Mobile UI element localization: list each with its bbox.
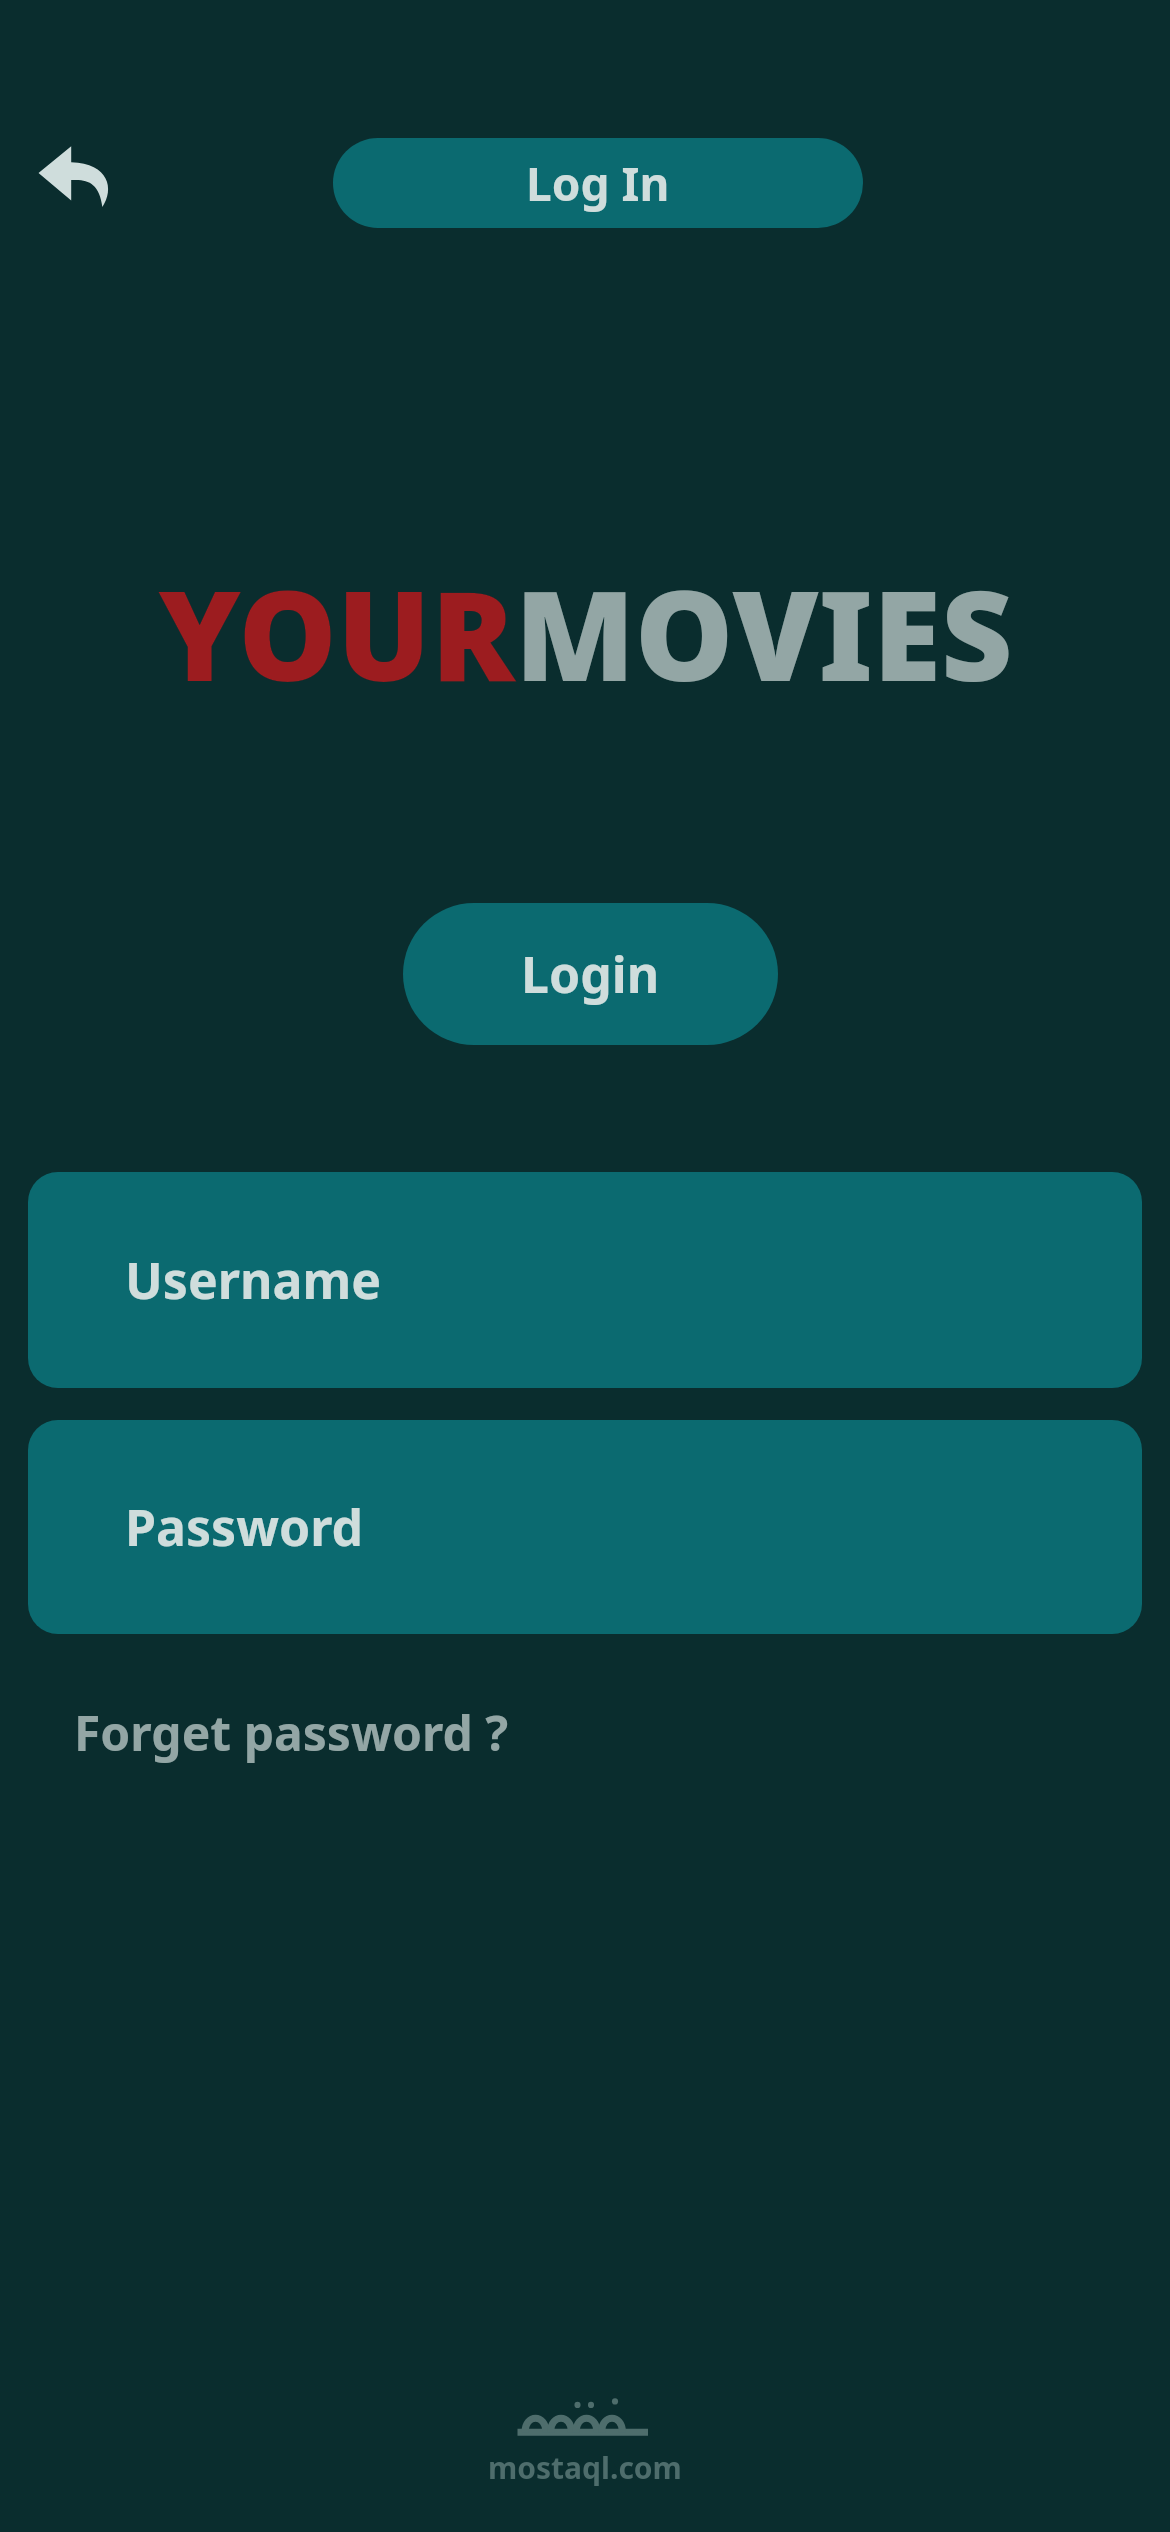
button[interactable]: Log In bbox=[333, 138, 863, 228]
button[interactable]: Login bbox=[403, 903, 778, 1045]
staticText: mostaql.com bbox=[488, 2447, 682, 2488]
staticText: Username bbox=[125, 1246, 382, 1314]
staticText: Log In bbox=[526, 152, 670, 215]
button[interactable]: Password bbox=[28, 1420, 1142, 1634]
button[interactable]: Username bbox=[28, 1172, 1142, 1388]
staticText: YOURMOVIES bbox=[158, 548, 1013, 717]
button[interactable]: Back bbox=[20, 125, 130, 225]
staticText: Forget password ? bbox=[74, 1700, 509, 1765]
button[interactable]: Forget password ? bbox=[74, 1700, 509, 1765]
staticText: Login bbox=[521, 940, 660, 1008]
staticText: Password bbox=[125, 1493, 364, 1561]
